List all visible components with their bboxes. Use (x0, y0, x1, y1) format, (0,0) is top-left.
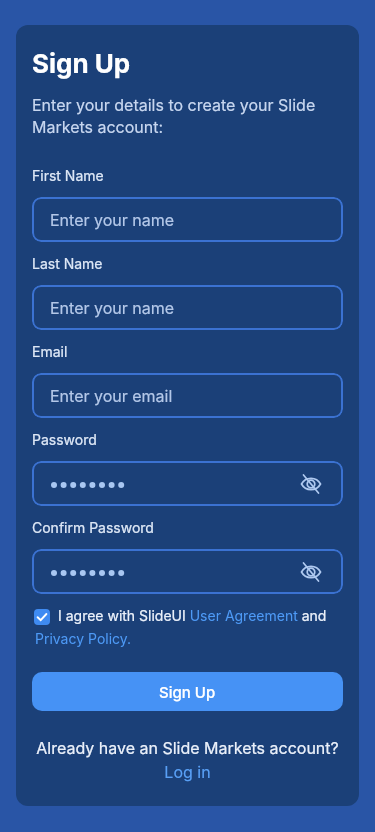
button[interactable]: Privacy Policy. (35, 630, 132, 647)
staticText: Enter your email (50, 386, 173, 405)
staticText: Confirm Password (32, 519, 154, 536)
staticText: Email (32, 343, 68, 360)
staticText: Sign Up (32, 48, 131, 79)
button[interactable]: Enter your name (32, 285, 343, 330)
staticText: Already have an Slide Markets account? (36, 738, 339, 757)
button[interactable] (34, 609, 50, 625)
staticText: First Name (32, 167, 104, 184)
button[interactable]: Log in (164, 762, 211, 781)
staticText: Enter your name (50, 210, 175, 229)
staticText: Sign Up (159, 683, 216, 701)
staticText: Last Name (32, 255, 103, 272)
button[interactable]: I agree with SlideUI User Agreement and (58, 607, 327, 624)
staticText: Password (32, 431, 97, 448)
button[interactable] (32, 549, 343, 594)
button[interactable] (32, 461, 343, 506)
staticText: Enter your details to create your Slide … (32, 95, 316, 137)
button[interactable]: Enter your name (32, 197, 343, 242)
button[interactable]: Enter your email (32, 373, 343, 418)
button[interactable]: Sign Up (32, 672, 343, 711)
staticText: Enter your name (50, 298, 175, 317)
